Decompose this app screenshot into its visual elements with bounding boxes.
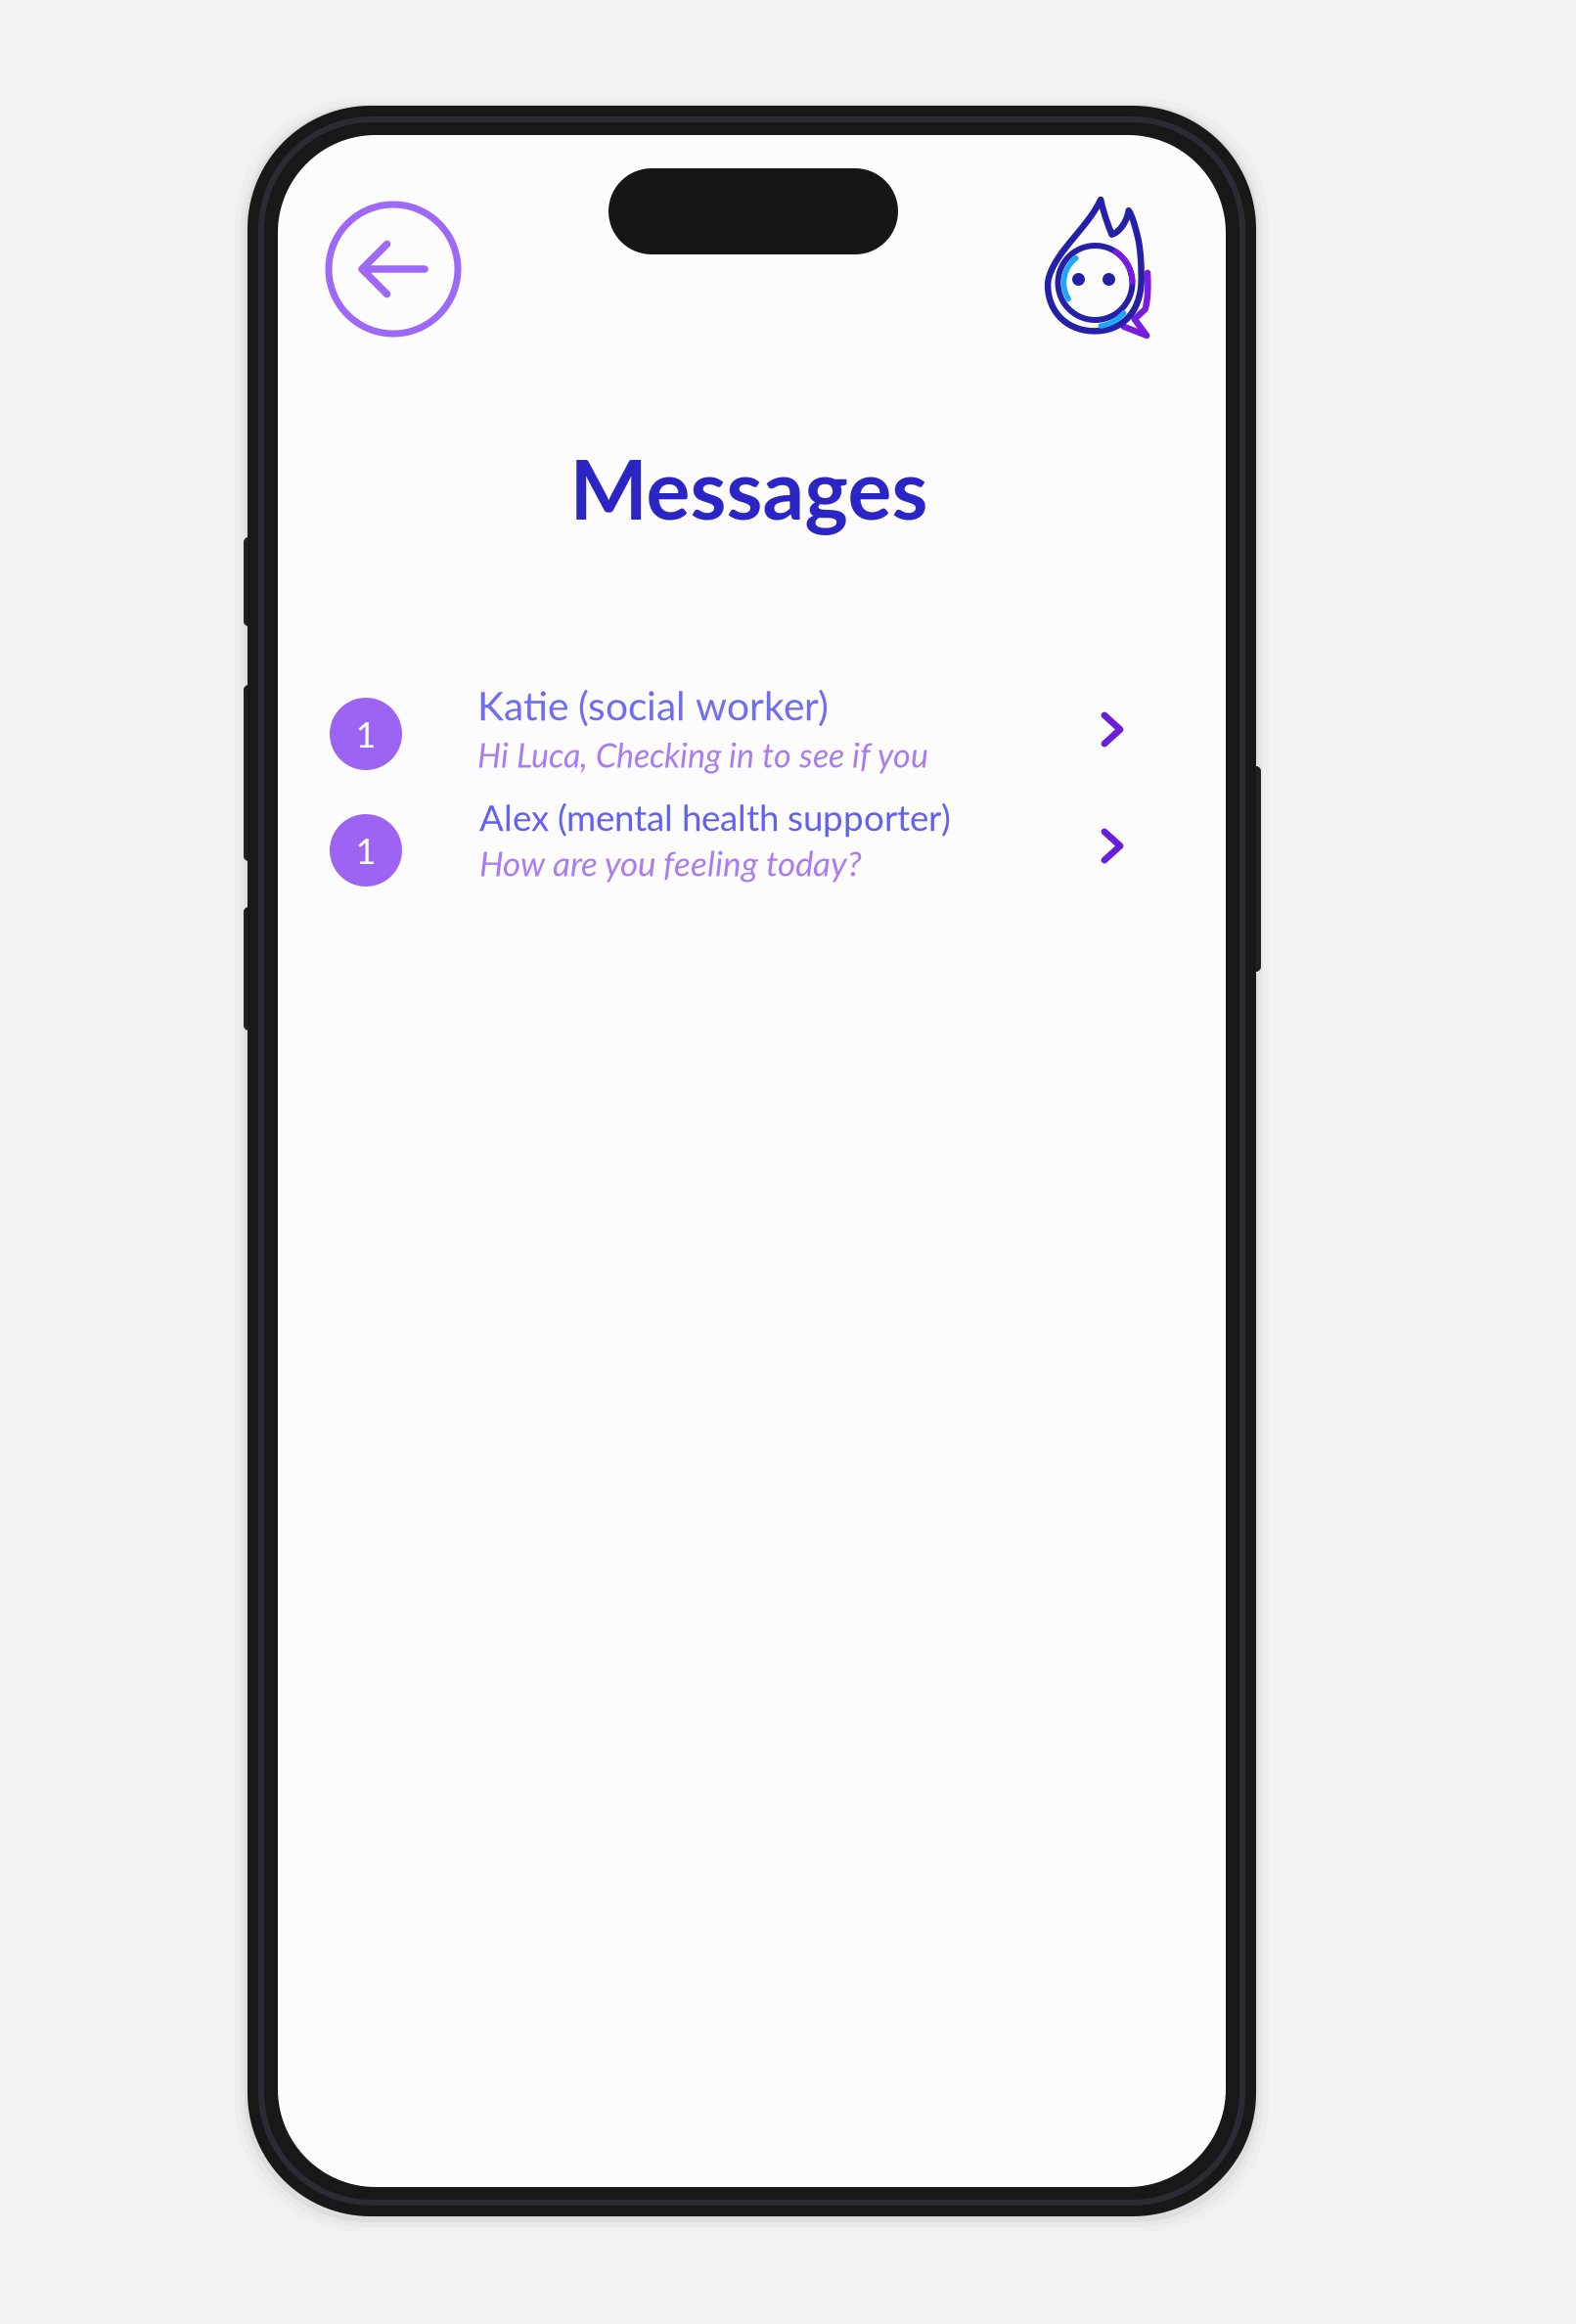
button[interactable]: 1 — [278, 676, 1226, 793]
staticText: How are you feeling today? — [479, 843, 862, 884]
staticText: Hi Luca, Checking in to see if you — [477, 735, 928, 775]
staticText: Katie (social worker) — [477, 681, 829, 729]
staticText: Alex (mental health supporter) — [479, 796, 951, 839]
staticText: Messages — [570, 438, 928, 537]
staticText: 1 — [356, 713, 376, 755]
button[interactable]: Scuttle logo — [1047, 200, 1148, 337]
button[interactable]: Back — [329, 205, 458, 334]
button[interactable]: 1 — [278, 793, 1226, 909]
staticText: 1 — [356, 829, 376, 871]
